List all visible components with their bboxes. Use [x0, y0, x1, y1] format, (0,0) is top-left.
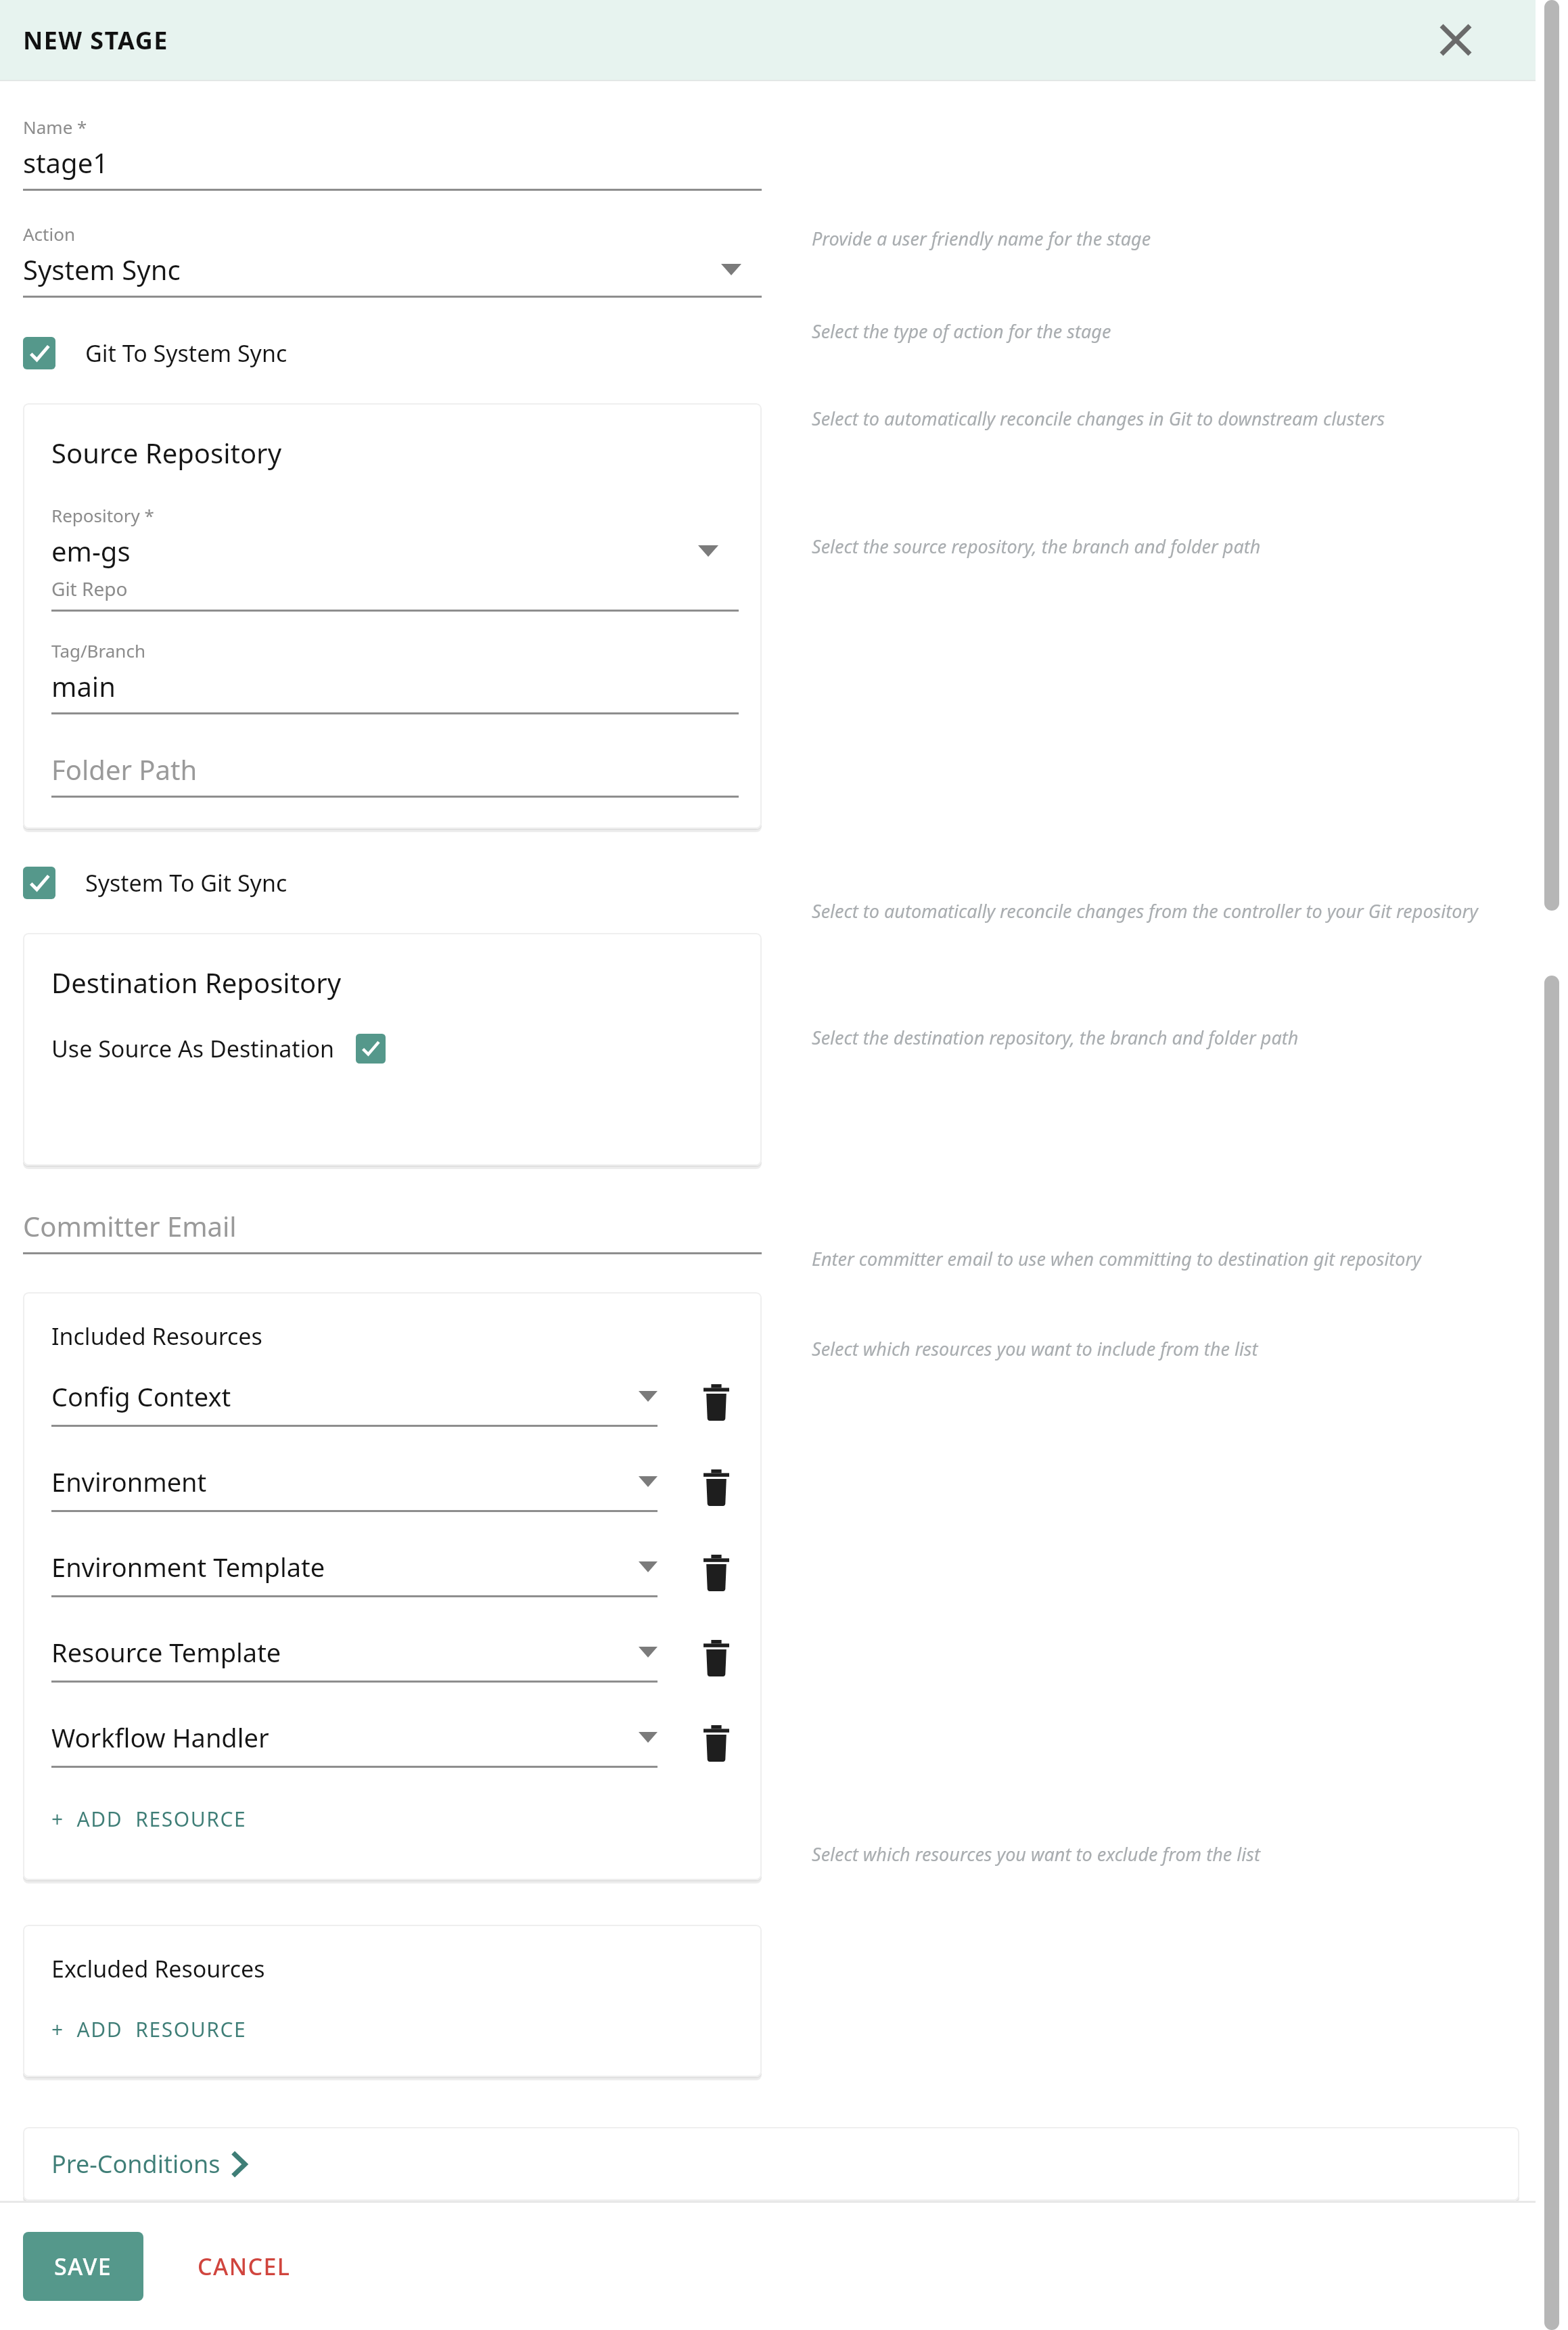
- staticText: Select the type of action for the stage: [812, 319, 1111, 344]
- staticText: main: [51, 668, 116, 704]
- button[interactable]: Git To System Sync: [23, 337, 287, 369]
- staticText: Source Repository: [51, 434, 282, 471]
- button[interactable]: Close: [1425, 9, 1487, 71]
- staticText: Select the destination repository, the b…: [812, 1025, 1299, 1050]
- button[interactable]: System To Git Sync: [23, 867, 287, 899]
- button[interactable]: Resource Template: [51, 1630, 762, 1686]
- button[interactable]: Workflow Handler: [51, 1716, 762, 1771]
- staticText: Pre-Conditions: [51, 2147, 221, 2180]
- button[interactable]: Delete Workflow Handler: [689, 1716, 744, 1771]
- staticText: + ADD RESOURCE: [51, 1805, 247, 1833]
- staticText: Destination Repository: [51, 964, 342, 1001]
- staticText: Select which resources you want to inclu…: [812, 1336, 1258, 1361]
- button[interactable]: Action: [23, 222, 762, 298]
- button[interactable]: Pre-Conditions: [23, 2127, 1519, 2201]
- button[interactable]: Delete Resource Template: [689, 1630, 744, 1686]
- button[interactable]: Config Context: [51, 1375, 762, 1430]
- staticText: NEW STAGE: [23, 24, 168, 57]
- button[interactable]: Use Source As Destination: [51, 1033, 386, 1064]
- staticText: Select to automatically reconcile change…: [812, 898, 1478, 923]
- staticText: Git To System Sync: [85, 338, 287, 369]
- staticText: Resource Template: [51, 1635, 639, 1670]
- staticText: Environment: [51, 1464, 639, 1499]
- staticText: Enter committer email to use when commit…: [812, 1246, 1421, 1271]
- staticText: CANCEL: [198, 2251, 291, 2282]
- staticText: Committer Email: [23, 1208, 237, 1244]
- button[interactable]: + ADD RESOURCE: [51, 2009, 247, 2050]
- staticText: Action: [23, 222, 75, 246]
- staticText: Tag/Branch: [51, 639, 145, 662]
- staticText: Provide a user friendly name for the sta…: [812, 226, 1151, 251]
- staticText: Excluded Resources: [51, 1953, 265, 1984]
- staticText: Repository *: [51, 503, 154, 527]
- button[interactable]: Environment Template: [51, 1545, 762, 1601]
- staticText: Name *: [23, 115, 87, 139]
- staticText: Environment Template: [51, 1549, 639, 1584]
- staticText: System To Git Sync: [85, 867, 287, 898]
- button[interactable]: Delete Config Context: [689, 1375, 744, 1430]
- staticText: em-gs: [51, 532, 131, 569]
- button[interactable]: CANCEL: [166, 2232, 322, 2301]
- staticText: Select to automatically reconcile change…: [812, 406, 1385, 431]
- staticText: Folder Path: [51, 751, 198, 787]
- staticText: Included Resources: [51, 1321, 262, 1352]
- staticText: Config Context: [51, 1379, 639, 1414]
- staticText: SAVE: [54, 2251, 112, 2282]
- staticText: + ADD RESOURCE: [51, 2015, 247, 2043]
- staticText: Git Repo: [51, 576, 128, 601]
- staticText: stage1: [23, 144, 109, 181]
- button[interactable]: Environment: [51, 1460, 762, 1515]
- staticText: Use Source As Destination: [51, 1033, 334, 1064]
- button[interactable]: Delete Environment: [689, 1460, 744, 1515]
- staticText: Workflow Handler: [51, 1720, 639, 1755]
- button[interactable]: SAVE: [23, 2232, 143, 2301]
- button[interactable]: Repository *: [51, 503, 739, 612]
- staticText: Select the source repository, the branch…: [812, 534, 1261, 559]
- staticText: System Sync: [23, 251, 181, 288]
- button[interactable]: Delete Environment Template: [689, 1545, 744, 1601]
- staticText: Select which resources you want to exclu…: [812, 1842, 1260, 1867]
- button[interactable]: + ADD RESOURCE: [51, 1798, 247, 1840]
